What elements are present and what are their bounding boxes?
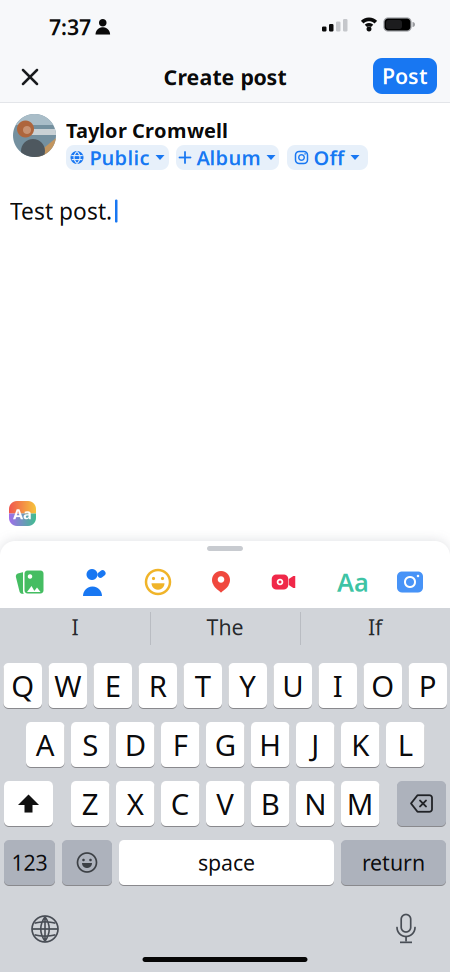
staticText: Aa	[13, 504, 32, 523]
staticText: T	[195, 666, 211, 705]
button[interactable]: Tag people	[81, 568, 109, 596]
button[interactable]: G	[206, 722, 244, 767]
button[interactable]: Live video	[270, 568, 298, 596]
staticText: X	[127, 784, 144, 823]
button[interactable]: If	[300, 610, 450, 644]
staticText: J	[311, 725, 319, 764]
staticText: G	[215, 725, 236, 764]
button[interactable]: P	[408, 663, 447, 708]
staticText: Off	[313, 144, 344, 171]
button[interactable]: Emoji	[62, 840, 112, 885]
button[interactable]: F	[161, 722, 199, 767]
button[interactable]: 123	[4, 840, 55, 885]
button[interactable]: A	[26, 722, 64, 767]
button[interactable]: Off	[287, 145, 368, 170]
staticText: O	[371, 666, 394, 705]
button[interactable]: R	[138, 663, 177, 708]
button[interactable]: Shift	[4, 781, 53, 826]
staticText: Post	[382, 62, 428, 90]
button[interactable]: Q	[3, 663, 42, 708]
button[interactable]: Feeling/Activity	[144, 568, 172, 596]
staticText: return	[362, 848, 425, 877]
staticText: Aa	[337, 565, 369, 599]
button[interactable]: W	[48, 663, 87, 708]
button[interactable]: M	[341, 781, 379, 826]
button[interactable]: Z	[71, 781, 109, 826]
staticText: R	[149, 666, 167, 705]
staticText: Z	[82, 784, 99, 823]
staticText: K	[351, 725, 369, 764]
staticText: M	[347, 784, 374, 823]
staticText: C	[171, 784, 190, 823]
button[interactable]: D	[116, 722, 154, 767]
staticText: B	[261, 784, 280, 823]
button[interactable]: X	[116, 781, 154, 826]
button[interactable]: Check in	[207, 568, 235, 596]
button[interactable]: O	[363, 663, 402, 708]
staticText: S	[82, 725, 98, 764]
staticText: The	[206, 613, 243, 641]
staticText: V	[216, 784, 234, 823]
button[interactable]: Background color	[9, 501, 36, 526]
button[interactable]: Camera	[396, 568, 424, 596]
staticText: 7:37	[49, 13, 91, 41]
button[interactable]: Y	[228, 663, 267, 708]
button[interactable]: Album	[176, 145, 279, 170]
staticText: I	[333, 666, 343, 705]
staticText: Album	[196, 144, 260, 171]
button[interactable]: N	[296, 781, 334, 826]
button[interactable]: V	[206, 781, 244, 826]
staticText: Test post.	[10, 196, 112, 226]
button[interactable]: The	[150, 610, 300, 644]
button[interactable]: H	[251, 722, 289, 767]
staticText: D	[125, 725, 146, 764]
button[interactable]: Delete	[397, 781, 446, 826]
button[interactable]: Close	[19, 66, 41, 88]
staticText: L	[398, 725, 413, 764]
button[interactable]: Next keyboard	[29, 913, 61, 945]
staticText: U	[282, 666, 303, 705]
button[interactable]: I	[318, 663, 357, 708]
button[interactable]: L	[386, 722, 424, 767]
staticText: space	[198, 848, 255, 877]
button[interactable]: S	[71, 722, 109, 767]
button[interactable]: C	[161, 781, 199, 826]
staticText: E	[105, 666, 121, 705]
button[interactable]: J	[296, 722, 334, 767]
button[interactable]: U	[273, 663, 312, 708]
staticText: N	[304, 784, 326, 823]
button[interactable]: Post	[373, 58, 437, 94]
staticText: H	[259, 725, 281, 764]
button[interactable]: Photo/Video	[18, 568, 46, 596]
staticText: A	[36, 725, 55, 764]
button[interactable]: B	[251, 781, 289, 826]
button[interactable]: Public	[66, 145, 169, 170]
button[interactable]: return	[341, 840, 446, 885]
button[interactable]: K	[341, 722, 379, 767]
button[interactable]: T	[183, 663, 222, 708]
staticText: Taylor Cromwell	[66, 117, 228, 144]
staticText: I	[71, 613, 78, 641]
staticText: Create post	[163, 63, 286, 91]
button[interactable]: I	[0, 610, 150, 644]
staticText: Y	[239, 666, 256, 705]
staticText: If	[368, 613, 382, 641]
button[interactable]: space	[119, 840, 334, 885]
staticText: W	[54, 666, 81, 705]
staticText: Public	[89, 144, 149, 171]
staticText: 123	[11, 848, 47, 877]
button[interactable]: E	[93, 663, 132, 708]
staticText: P	[419, 666, 437, 705]
button[interactable]: Dictate	[394, 912, 418, 941]
button[interactable]: Text style	[333, 568, 373, 596]
staticText: F	[173, 725, 188, 764]
staticText: Q	[11, 666, 34, 705]
